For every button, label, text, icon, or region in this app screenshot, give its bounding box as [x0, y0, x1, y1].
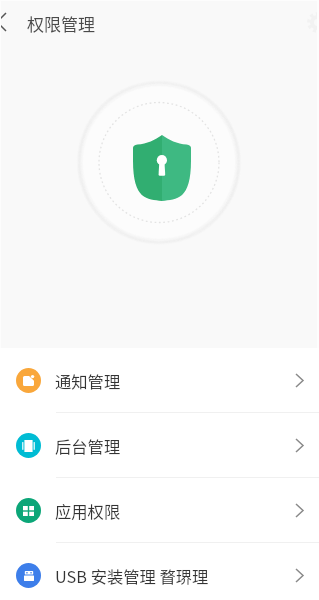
- button[interactable]: 通知管理: [0, 348, 319, 413]
- staticText: 通知管理: [55, 369, 121, 393]
- button[interactable]: Settings: [302, 7, 319, 37]
- staticText: 应用权限: [55, 499, 121, 523]
- staticText: 后台管理: [55, 434, 121, 458]
- button[interactable]: 后台管理: [0, 413, 319, 478]
- button[interactable]: USB 安装管理 瞀琾理: [0, 543, 319, 600]
- button[interactable]: 应用权限: [0, 478, 319, 543]
- staticText: USB 安装管理 瞀琾理: [55, 564, 209, 588]
- staticText: 权限管理: [27, 11, 95, 36]
- button[interactable]: Back: [0, 0, 17, 45]
